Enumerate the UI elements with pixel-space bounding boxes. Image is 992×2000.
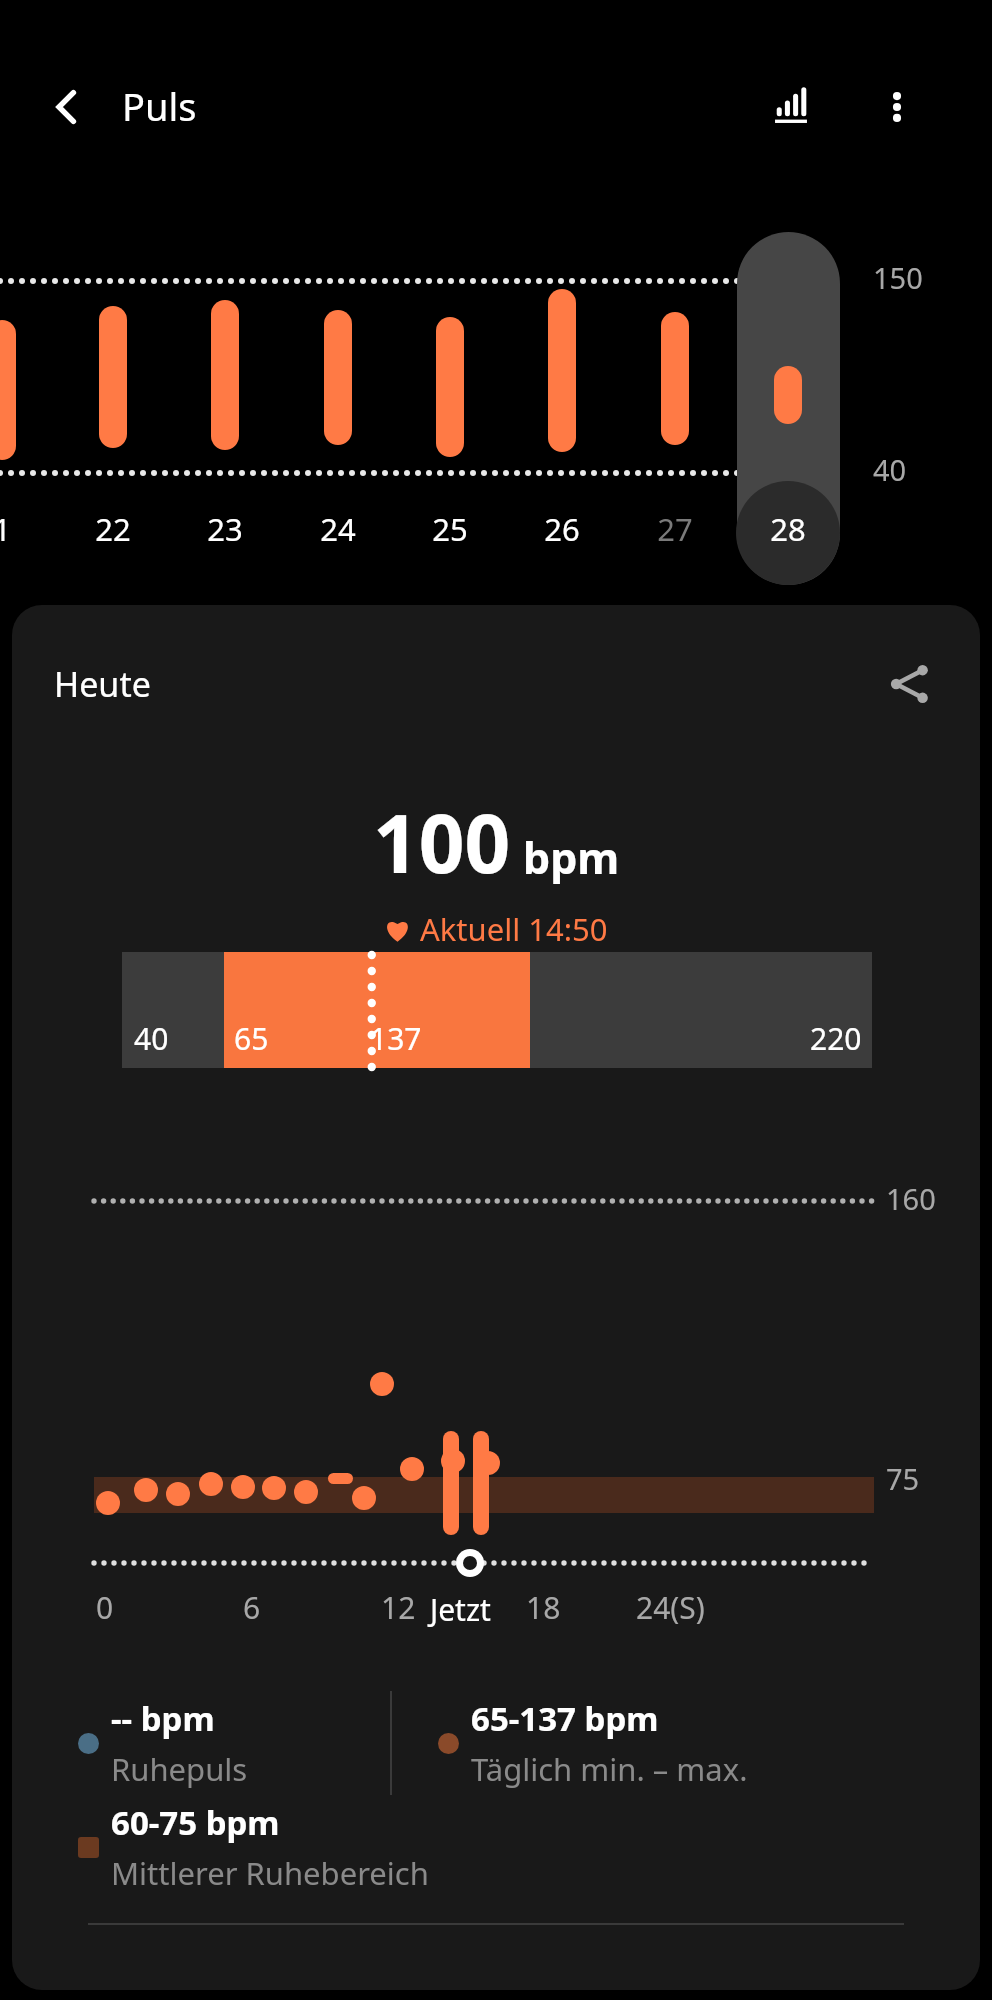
staticText: Ruhepuls [111, 1748, 248, 1790]
button[interactable]: Share [874, 648, 946, 720]
staticText: 12 [381, 1587, 416, 1628]
staticText: 40 [134, 1018, 169, 1059]
staticText: 65 [234, 1018, 269, 1059]
button[interactable]: 28 [748, 502, 828, 556]
button[interactable]: 24 [298, 502, 378, 556]
staticText: 24(S) [636, 1587, 705, 1628]
button[interactable]: 25 [410, 502, 490, 556]
staticText: 220 [810, 1018, 862, 1059]
staticText: -- bpm [111, 1696, 215, 1741]
button[interactable]: 65-137 bpm [438, 1687, 748, 1799]
staticText: 22 [95, 508, 131, 550]
staticText: Aktuell 14:50 [420, 908, 608, 950]
staticText: Jetzt [430, 1589, 491, 1630]
button[interactable]: More options [866, 76, 928, 138]
staticText: 40 [873, 450, 907, 489]
button[interactable]: 1 [0, 502, 42, 556]
staticText: bpm [523, 828, 620, 887]
staticText: Täglich min. – max. [471, 1748, 748, 1790]
button[interactable]: 60-75 bpm [78, 1791, 429, 1903]
button[interactable]: 23 [185, 502, 265, 556]
staticText: Mittlerer Ruhebereich [111, 1852, 429, 1894]
staticText: Puls [122, 80, 197, 132]
staticText: 150 [873, 258, 923, 297]
staticText: 100 [373, 787, 511, 896]
staticText: 6 [243, 1587, 261, 1628]
staticText: 25 [432, 508, 468, 550]
staticText: 28 [770, 508, 806, 550]
staticText: 60-75 bpm [111, 1800, 280, 1845]
staticText: 137 [370, 1018, 422, 1059]
button[interactable]: Chart [760, 76, 822, 138]
staticText: 18 [526, 1587, 561, 1628]
staticText: 23 [207, 508, 243, 550]
staticText: 27 [657, 508, 693, 550]
staticText: 75 [886, 1459, 920, 1498]
staticText: 65-137 bpm [471, 1696, 659, 1741]
staticText: 24 [320, 508, 356, 550]
button[interactable]: 27 [635, 502, 715, 556]
staticText: 160 [886, 1179, 936, 1218]
button[interactable]: Heute [54, 661, 151, 707]
button[interactable]: 26 [522, 502, 602, 556]
button[interactable]: Back [36, 76, 98, 138]
button[interactable]: -- bpm [78, 1687, 248, 1799]
staticText: 0 [96, 1587, 114, 1628]
staticText: 1 [0, 508, 11, 550]
staticText: 26 [544, 508, 580, 550]
button[interactable]: 22 [73, 502, 153, 556]
